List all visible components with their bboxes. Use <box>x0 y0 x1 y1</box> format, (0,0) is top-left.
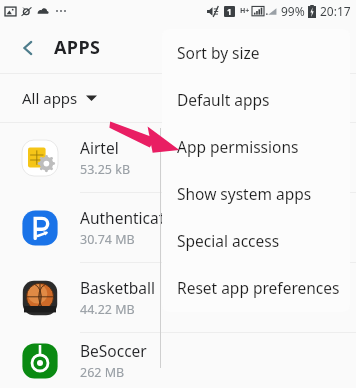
button[interactable]: Basketball <box>0 263 356 332</box>
staticText: All apps <box>22 88 78 108</box>
button[interactable]: Authenticator <box>0 193 356 262</box>
staticText: Sort by size <box>177 42 260 63</box>
staticText: App permissions <box>177 136 299 157</box>
staticText: Authenticator <box>80 207 181 228</box>
staticText: Airtel <box>80 137 119 158</box>
button[interactable]: All apps <box>14 82 105 114</box>
staticText: 1 <box>227 6 232 17</box>
button[interactable]: Show system apps <box>162 170 350 217</box>
button[interactable]: Airtel <box>0 123 356 192</box>
staticText: Show system apps <box>177 183 312 204</box>
staticText: H+ <box>240 6 250 16</box>
button[interactable]: App permissions <box>162 123 350 170</box>
button[interactable]: Reset app preferences <box>162 264 350 311</box>
staticText: Default apps <box>177 89 270 110</box>
staticText: APPS <box>54 35 101 60</box>
staticText: Special access <box>177 230 280 251</box>
button[interactable]: Back <box>8 28 48 68</box>
staticText: BeSoccer <box>80 340 147 361</box>
staticText: 30.74 MB <box>80 231 135 248</box>
staticText: 20:17 <box>320 3 351 19</box>
button[interactable]: Sort by size <box>162 29 350 76</box>
staticText: 262 MB <box>80 364 125 381</box>
button[interactable]: BeSoccer <box>0 333 356 388</box>
staticText: Basketball <box>80 277 156 298</box>
staticText: 53.25 kB <box>80 161 131 178</box>
staticText: 44.22 MB <box>80 301 135 318</box>
button[interactable]: Special access <box>162 217 350 264</box>
staticText: 99% <box>281 3 305 19</box>
button[interactable]: Default apps <box>162 76 350 123</box>
staticText: Reset app preferences <box>177 277 340 298</box>
